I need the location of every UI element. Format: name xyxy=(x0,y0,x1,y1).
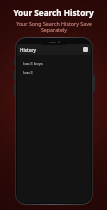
staticText: Your Song Search History Save Separately xyxy=(16,20,92,34)
staticText: History xyxy=(20,47,36,53)
button[interactable]: More options xyxy=(83,47,88,52)
button[interactable]: bac3 boys xyxy=(17,59,91,68)
button[interactable]: bac3 xyxy=(17,68,91,77)
staticText: bac3 boys xyxy=(23,61,43,67)
staticText: bac3 xyxy=(23,70,33,76)
staticText: Your Search History xyxy=(13,7,94,18)
